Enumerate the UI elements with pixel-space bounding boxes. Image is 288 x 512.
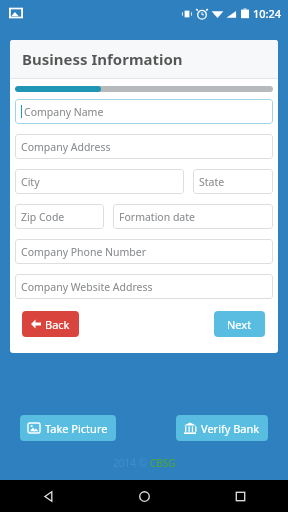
button[interactable]: Company Name bbox=[15, 99, 273, 124]
staticText: CBSG bbox=[150, 456, 176, 470]
button[interactable]: Back bbox=[22, 311, 79, 337]
button[interactable]: Recent apps bbox=[192, 480, 288, 512]
staticText: Formation date bbox=[119, 210, 195, 224]
staticText: Business Information bbox=[22, 49, 183, 69]
button[interactable]: City bbox=[15, 169, 184, 194]
staticText: Company Website Address bbox=[21, 280, 153, 294]
staticText: Next bbox=[227, 317, 252, 332]
staticText: 2014 © bbox=[113, 456, 150, 470]
button[interactable] bbox=[15, 86, 273, 92]
staticText: Company Address bbox=[21, 140, 111, 154]
button[interactable]: Zip Code bbox=[15, 204, 104, 229]
button[interactable]: Verify Bank bbox=[176, 415, 268, 441]
staticText: Verify Bank bbox=[201, 421, 260, 436]
staticText: State bbox=[199, 175, 225, 189]
button[interactable]: Back bbox=[0, 480, 96, 512]
staticText: Company Name bbox=[24, 105, 104, 119]
button[interactable]: Company Address bbox=[15, 134, 273, 159]
button[interactable]: State bbox=[193, 169, 273, 194]
staticText: 10:24 bbox=[253, 6, 282, 21]
button[interactable]: Home bbox=[96, 480, 192, 512]
button[interactable]: Formation date bbox=[113, 204, 273, 229]
staticText: Back bbox=[45, 317, 70, 332]
button[interactable]: 2014 © bbox=[113, 456, 176, 470]
button[interactable]: Next bbox=[214, 311, 265, 337]
staticText: Zip Code bbox=[21, 210, 65, 224]
button[interactable]: Company Phone Number bbox=[15, 239, 273, 264]
button[interactable]: Take Picture bbox=[20, 415, 116, 441]
staticText: Company Phone Number bbox=[21, 245, 147, 259]
button[interactable]: Company Website Address bbox=[15, 274, 273, 299]
staticText: Take Picture bbox=[45, 421, 108, 436]
staticText: City bbox=[21, 175, 40, 189]
